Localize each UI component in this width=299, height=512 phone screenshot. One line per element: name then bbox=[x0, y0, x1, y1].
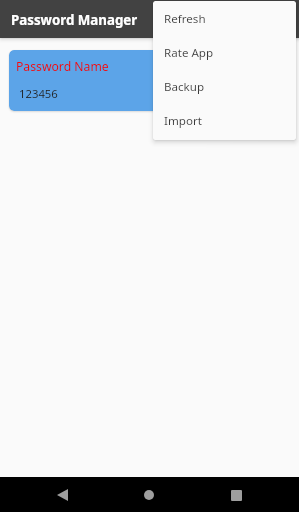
staticText: Backup bbox=[164, 79, 205, 95]
button[interactable]: Home bbox=[132, 478, 166, 512]
staticText: Password Name bbox=[16, 58, 109, 75]
button[interactable]: More options bbox=[261, 0, 299, 38]
staticText: Refresh bbox=[164, 11, 206, 27]
button[interactable]: Password Name bbox=[9, 50, 290, 111]
button[interactable]: Recent apps bbox=[219, 478, 253, 512]
button[interactable]: Rate App bbox=[153, 35, 296, 69]
staticText: 123456 bbox=[19, 86, 58, 101]
staticText: Import bbox=[164, 113, 202, 129]
button[interactable]: Backup bbox=[153, 69, 296, 103]
staticText: Password Manager bbox=[11, 11, 138, 29]
button[interactable]: Refresh bbox=[153, 1, 296, 35]
button[interactable]: Import bbox=[153, 103, 296, 137]
staticText: Rate App bbox=[164, 45, 214, 61]
button[interactable]: Back bbox=[45, 478, 79, 512]
